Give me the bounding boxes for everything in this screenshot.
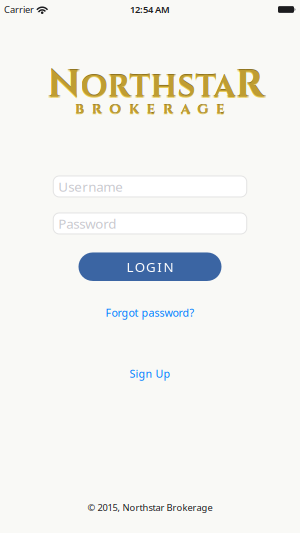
staticText: BROKERAGE	[75, 101, 225, 119]
staticText: NORTHSTAR	[47, 60, 264, 110]
button[interactable]: Username	[53, 176, 247, 197]
staticText: Username	[58, 178, 123, 195]
staticText: Password	[58, 215, 116, 232]
button[interactable]: Forgot password?	[105, 305, 194, 320]
staticText: NORTHSTAR	[47, 59, 264, 110]
button[interactable]: LOGIN	[78, 252, 221, 281]
button[interactable]: Password	[53, 213, 247, 234]
staticText: © 2015, Northstar Brokerage	[87, 501, 212, 513]
button[interactable]: Sign Up	[129, 367, 170, 381]
staticText: 12:54 AM	[130, 3, 170, 16]
staticText: BROKERAGE	[75, 100, 225, 119]
staticText: Sign Up	[129, 367, 170, 381]
staticText: BROKERAGE	[75, 100, 225, 118]
staticText: LOGIN	[126, 258, 174, 276]
staticText: NORTHSTAR	[47, 61, 264, 111]
staticText: Forgot password?	[105, 305, 194, 320]
staticText: Carrier	[4, 3, 34, 16]
